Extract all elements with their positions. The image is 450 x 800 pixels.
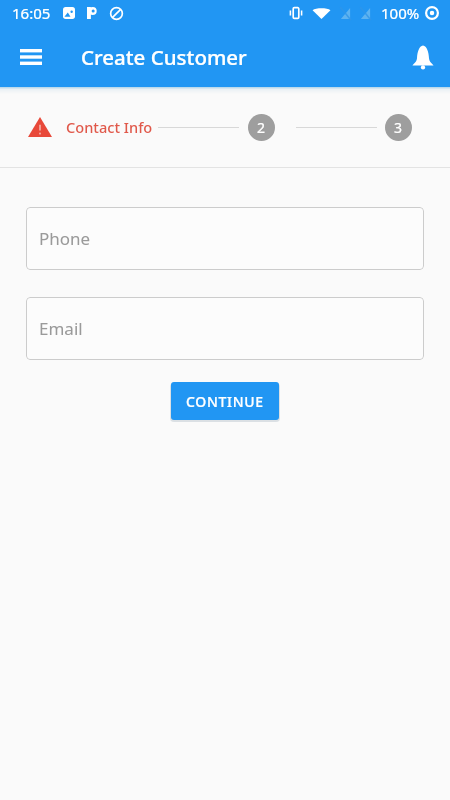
staticText: 16:05 [12,3,51,23]
staticText: Email [39,317,83,340]
button[interactable]: Notifications [402,36,444,78]
button[interactable]: Phone [26,207,424,270]
button[interactable]: 3 [385,114,412,141]
button[interactable]: 2 [248,114,275,141]
button[interactable]: Open navigation menu [10,36,52,78]
staticText: Phone [39,227,91,250]
button[interactable]: CONTINUE [171,382,279,420]
staticText: Create Customer [81,43,247,71]
staticText: 100% [381,3,420,23]
staticText: Contact Info [66,117,153,137]
staticText: 2 [257,118,266,137]
staticText: 3 [394,118,403,137]
button[interactable]: Contact Info [20,99,161,155]
button[interactable]: Email [26,297,424,360]
staticText: CONTINUE [186,392,264,411]
